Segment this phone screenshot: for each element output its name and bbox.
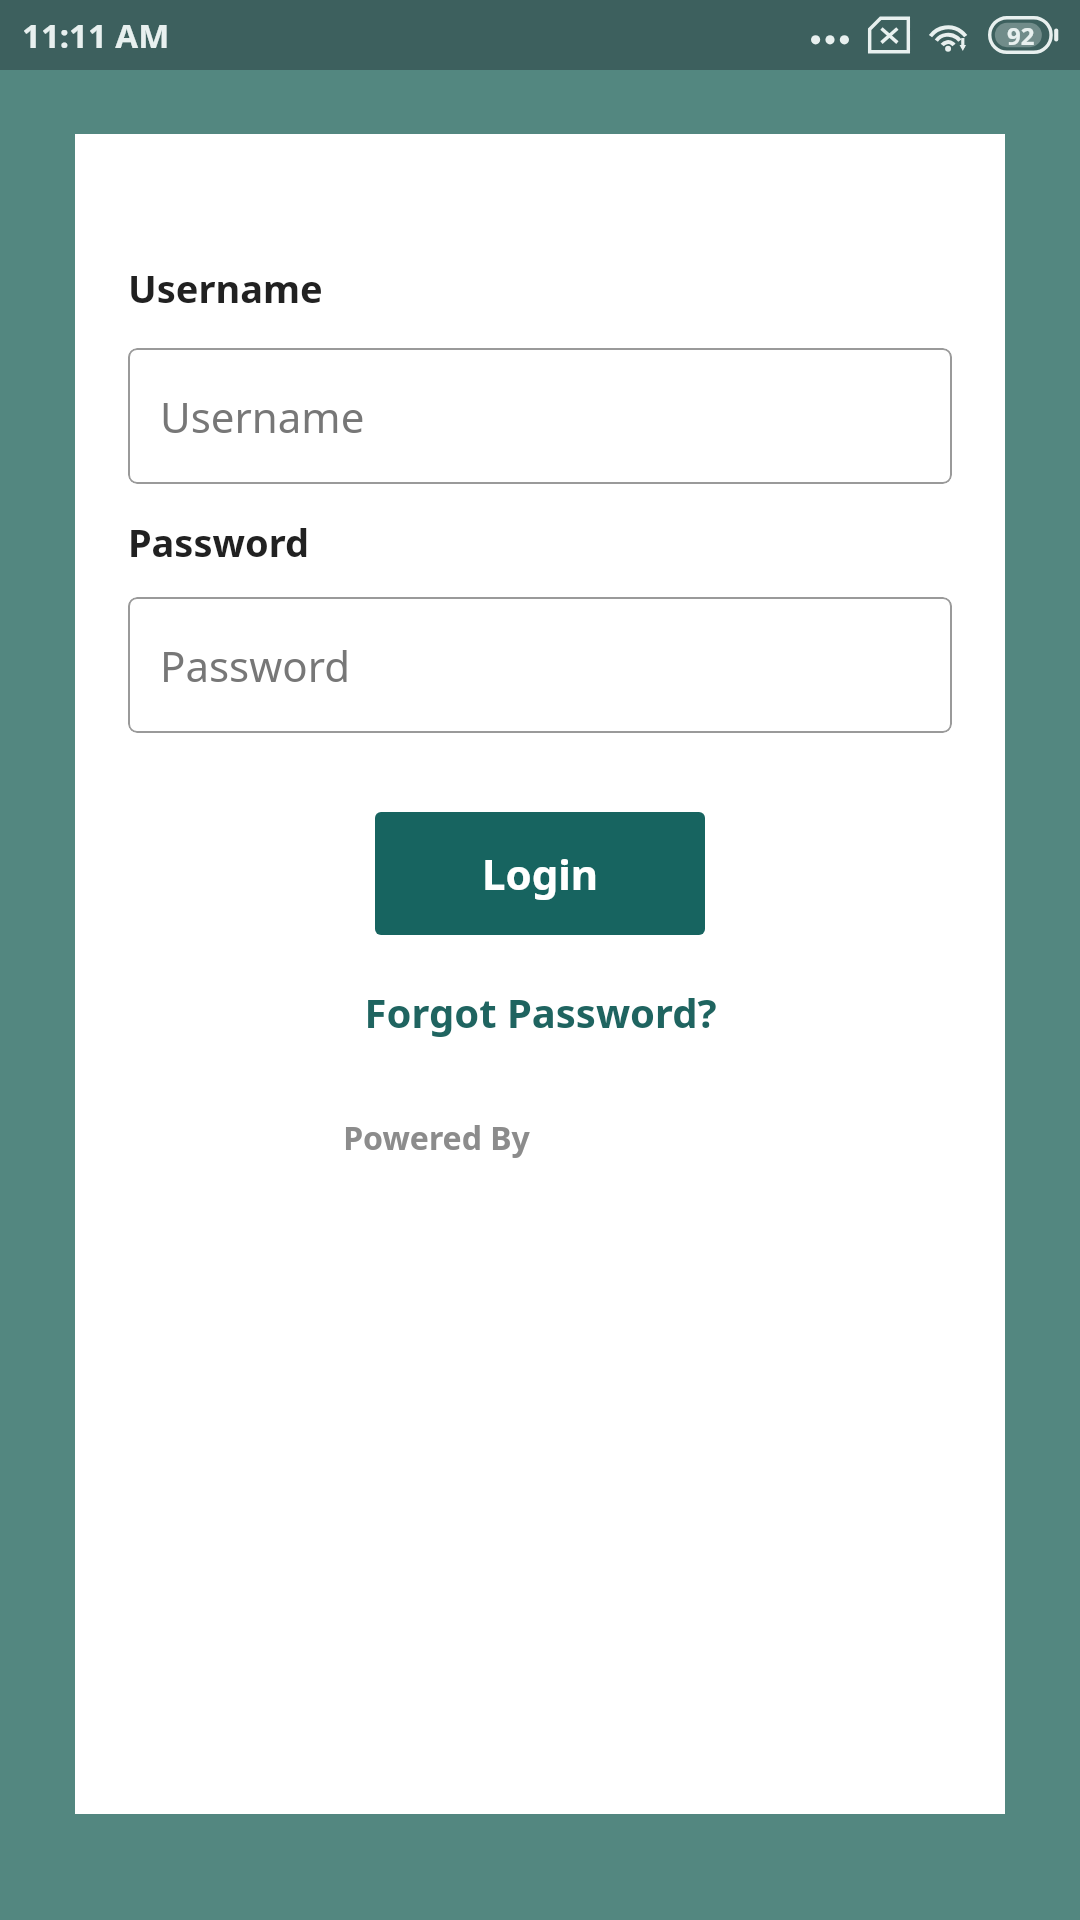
staticText: Username — [160, 388, 365, 445]
button[interactable]: Login — [375, 812, 705, 935]
button[interactable]: Username — [128, 348, 952, 484]
staticText: 92 — [1007, 19, 1035, 52]
staticText: Password — [160, 637, 350, 694]
staticText: Password — [128, 516, 310, 568]
staticText: Forgot Password? — [364, 985, 717, 1039]
staticText: Powered By — [343, 1116, 530, 1160]
staticText: Login — [482, 845, 599, 902]
staticText: Username — [128, 262, 323, 314]
button[interactable]: Password — [128, 597, 952, 733]
other: Wi-Fi connected — [926, 16, 972, 54]
button[interactable]: Forgot Password? — [75, 974, 1005, 1050]
other: No SIM card — [868, 16, 910, 54]
other: More notifications — [806, 15, 854, 55]
other: Battery 92 percent — [988, 16, 1060, 54]
staticText: 11:11 AM — [22, 13, 170, 58]
